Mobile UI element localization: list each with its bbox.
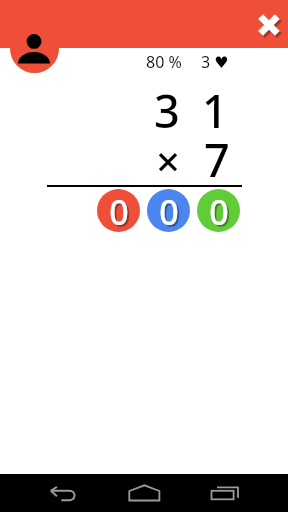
staticText: 0 (209, 189, 229, 232)
button[interactable]: 0 (197, 189, 240, 232)
button[interactable]: Back (44, 474, 84, 512)
staticText: 3 ♥ (201, 51, 229, 73)
staticText: 7 (204, 129, 230, 190)
button[interactable]: Home (124, 474, 164, 512)
staticText: 0 (111, 191, 131, 232)
staticText: 0 (161, 191, 181, 232)
staticText: 1 (202, 80, 228, 141)
button[interactable]: Recent apps (204, 474, 244, 512)
button[interactable]: 0 (147, 189, 190, 232)
button[interactable]: 0 (97, 189, 140, 232)
staticText: × (156, 132, 181, 189)
button[interactable]: Profile (10, 24, 59, 73)
button[interactable]: Close (251, 7, 287, 43)
staticText: 3 (154, 80, 180, 141)
staticText: 0 (211, 191, 231, 232)
staticText: 0 (109, 189, 129, 232)
staticText: 0 (159, 189, 179, 232)
staticText: 80 % (146, 51, 182, 73)
